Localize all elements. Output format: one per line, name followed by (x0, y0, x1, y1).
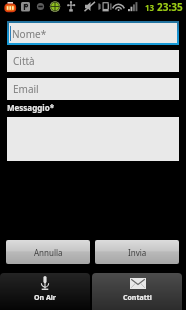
staticText: 13 (145, 2, 155, 13)
button[interactable]: Città (7, 50, 179, 72)
button[interactable]: Nome* (9, 23, 177, 43)
button[interactable]: Contatti (92, 273, 182, 310)
staticText: Città (13, 54, 35, 68)
staticText: Contatti (123, 293, 152, 303)
staticText: On Air (34, 293, 56, 303)
staticText: Email (13, 82, 39, 96)
button[interactable]: Invia (95, 240, 179, 264)
staticText: 23:35 (157, 0, 183, 14)
button[interactable]: Email (7, 78, 179, 100)
staticText: Invia (128, 247, 147, 258)
staticText: Messaggio* (7, 102, 54, 113)
button[interactable]: On Air (0, 273, 90, 310)
button[interactable]: Annulla (6, 240, 90, 264)
staticText: Nome* (12, 27, 47, 41)
staticText: Annulla (34, 247, 63, 258)
